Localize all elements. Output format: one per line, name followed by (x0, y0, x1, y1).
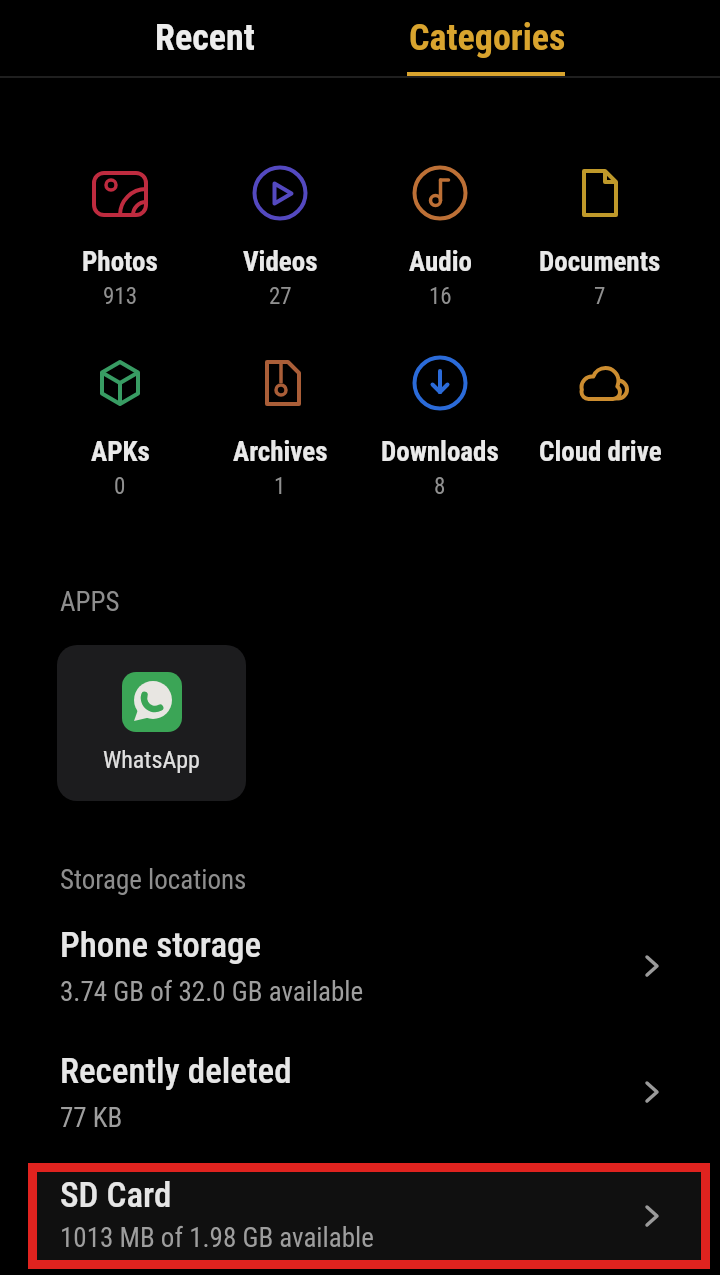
staticText: WhatsApp (103, 746, 200, 774)
button[interactable]: Categories (377, 14, 597, 62)
staticText: 1013 MB of 1.98 GB available (60, 1222, 374, 1254)
button[interactable]: APKs (40, 355, 200, 500)
button[interactable]: Recent (105, 14, 305, 62)
staticText: Storage locations (60, 864, 247, 896)
button[interactable]: Documents (520, 165, 680, 310)
staticText: Cloud drive (539, 436, 662, 468)
button[interactable]: SD Card (0, 1175, 720, 1275)
staticText: 913 (103, 283, 138, 310)
staticText: 8 (434, 473, 446, 500)
staticText: 1 (274, 473, 286, 500)
button[interactable]: Phone storage (0, 925, 720, 1043)
staticText: Audio (409, 246, 472, 278)
staticText: 16 (429, 283, 452, 310)
button[interactable]: Cloud drive (520, 355, 680, 500)
staticText: Recent (155, 17, 255, 59)
staticText: Phone storage (60, 925, 262, 966)
button[interactable]: Photos (40, 165, 200, 310)
button[interactable]: WhatsApp (57, 645, 246, 801)
button[interactable]: Recently deleted (0, 1051, 720, 1169)
staticText: Downloads (381, 436, 499, 468)
staticText: SD Card (60, 1175, 172, 1216)
staticText: Archives (233, 436, 328, 468)
staticText: 0 (114, 473, 126, 500)
button[interactable]: Audio (360, 165, 520, 310)
staticText: APKs (91, 436, 150, 468)
staticText: Recently deleted (60, 1051, 292, 1092)
staticText: 77 KB (60, 1102, 123, 1134)
staticText: Photos (82, 246, 158, 278)
staticText: Documents (539, 246, 661, 278)
staticText: Videos (243, 246, 318, 278)
button[interactable]: Archives (200, 355, 360, 500)
staticText: Categories (409, 17, 566, 59)
staticText: 7 (594, 283, 606, 310)
staticText: 27 (269, 283, 292, 310)
staticText: APPS (60, 586, 120, 618)
staticText: 3.74 GB of 32.0 GB available (60, 976, 364, 1008)
button[interactable]: Downloads (360, 355, 520, 500)
button[interactable]: Videos (200, 165, 360, 310)
